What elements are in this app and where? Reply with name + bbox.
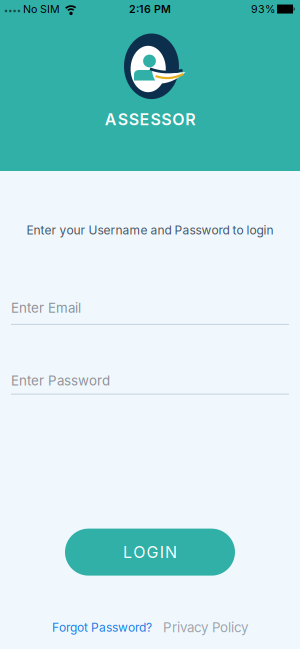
staticText: L — [123, 543, 132, 562]
staticText: S — [129, 110, 139, 129]
staticText: R — [185, 110, 195, 129]
staticText: 2:16 PM — [129, 3, 171, 15]
button[interactable]: Enter Email — [0, 300, 289, 325]
staticText: 93% — [251, 3, 275, 15]
button[interactable]: L — [65, 529, 235, 576]
staticText: Enter Email — [11, 300, 81, 316]
button[interactable]: Enter Password — [0, 373, 289, 395]
button[interactable]: Privacy Policy — [163, 620, 248, 635]
staticText: S — [118, 110, 128, 129]
button[interactable]: Forgot Password? — [52, 620, 152, 635]
staticText: O — [172, 110, 184, 129]
staticText: S — [161, 110, 171, 129]
staticText: Enter Password — [11, 373, 110, 389]
staticText: N — [165, 543, 177, 562]
staticText: O — [133, 543, 145, 562]
staticText: A — [105, 110, 117, 129]
staticText: No SIM — [23, 3, 60, 15]
staticText: I — [160, 543, 164, 562]
staticText: Enter your Username and Password to logi… — [26, 223, 273, 237]
staticText: Privacy Policy — [163, 620, 248, 635]
staticText: E — [140, 110, 150, 129]
staticText: S — [150, 110, 160, 129]
staticText: G — [146, 543, 158, 562]
staticText: Forgot Password? — [52, 620, 152, 635]
